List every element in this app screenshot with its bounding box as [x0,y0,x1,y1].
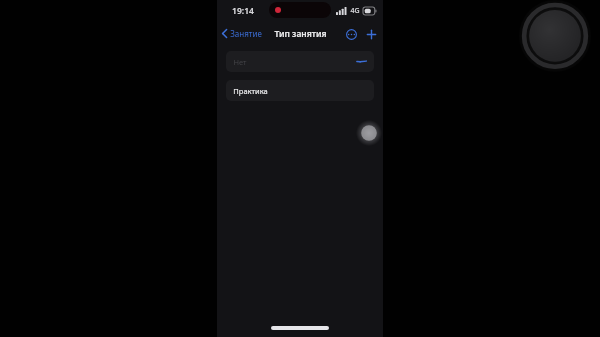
staticText: 19:14 [232,5,254,17]
button[interactable]: Занятие [217,26,266,41]
button[interactable]: Add [362,25,380,43]
staticText: 4G [350,6,360,16]
button[interactable]: Нет [226,51,374,72]
staticText: Занятие [230,28,262,39]
staticText: Нет [233,57,247,67]
button[interactable]: Практика [226,80,374,101]
button[interactable]: More options [342,25,360,43]
staticText: Тип занятия [274,28,327,40]
staticText: Практика [233,86,268,96]
